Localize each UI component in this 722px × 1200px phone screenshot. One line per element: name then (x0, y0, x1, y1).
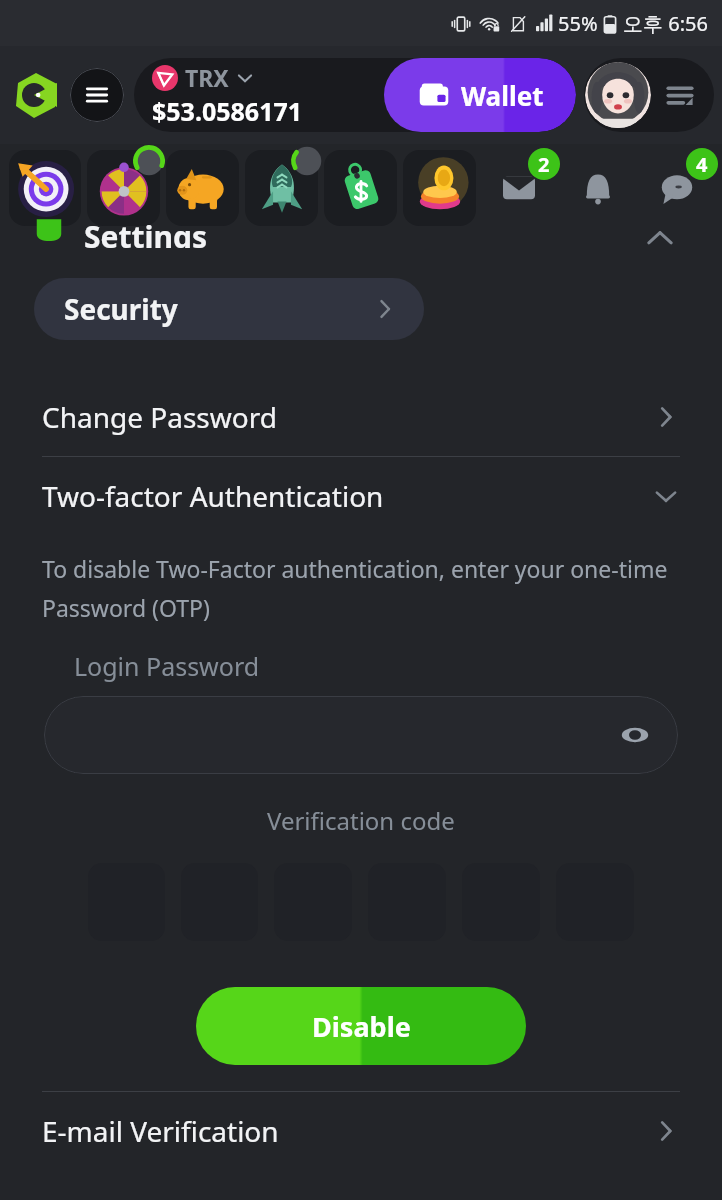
button[interactable]: Wallet (384, 58, 576, 132)
staticText: E-mail Verification (42, 1112, 279, 1150)
button[interactable]: Rocket game (245, 150, 318, 226)
button[interactable]: TRX (152, 62, 303, 128)
staticText: 4 (696, 151, 708, 178)
staticText: 55% (558, 10, 598, 37)
button[interactable]: Security (34, 278, 424, 340)
button[interactable]: Show password (620, 720, 650, 750)
staticText: TRX (185, 62, 229, 93)
button[interactable]: Profile (585, 62, 651, 128)
staticText: Security (64, 290, 178, 328)
button[interactable]: E-mail Verification (0, 1092, 722, 1170)
button[interactable]: Disable (196, 987, 526, 1065)
staticText: Password (OTP) (42, 592, 210, 623)
staticText: Settings (84, 216, 207, 248)
staticText: Disable (312, 1008, 411, 1045)
button[interactable]: Mail (488, 157, 550, 219)
button[interactable]: Coins (403, 150, 476, 226)
staticText: $53.0586171 (152, 94, 303, 128)
button[interactable]: Two-factor Authentication (0, 457, 722, 535)
button[interactable]: Settings (0, 232, 722, 264)
button[interactable]: Show password (44, 696, 678, 774)
staticText: 2 (538, 151, 550, 178)
staticText: Change Password (42, 398, 277, 436)
staticText: 오후 6:56 (623, 10, 708, 37)
staticText: Two-factor Authentication (42, 477, 384, 515)
button[interactable]: Target game (9, 150, 81, 226)
button[interactable]: Change Password (0, 378, 722, 456)
staticText: Verification code (267, 804, 455, 837)
staticText: To disable Two-Factor authentication, en… (42, 553, 668, 584)
other: Collapse (646, 226, 674, 254)
button[interactable]: Home (8, 67, 64, 123)
button[interactable]: Chat (646, 157, 708, 219)
button[interactable]: Price tag (324, 150, 397, 226)
staticText: Wallet (461, 78, 544, 113)
button[interactable]: Piggy bank (166, 150, 239, 226)
button[interactable]: More options (660, 75, 700, 115)
staticText: Login Password (74, 649, 260, 683)
button[interactable]: Menu (70, 68, 124, 122)
button[interactable]: Wheel game (87, 150, 160, 226)
button[interactable]: Notifications (567, 157, 629, 219)
